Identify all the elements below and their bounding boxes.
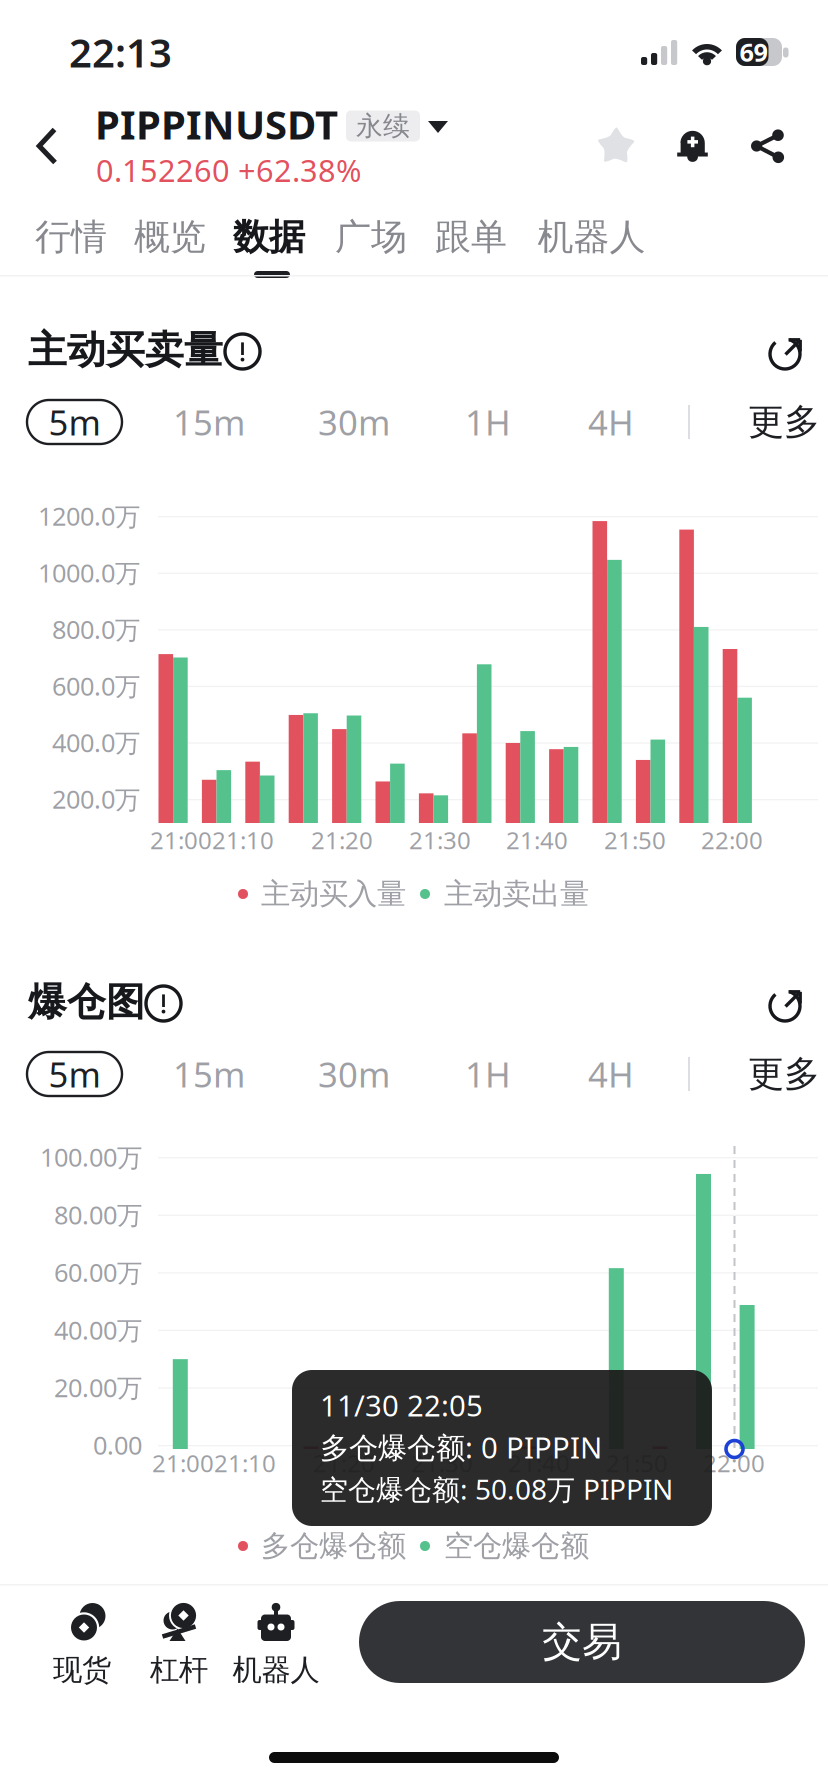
button[interactable]: 1H bbox=[0, 0, 828, 1792]
staticText: 200.0万 bbox=[52, 782, 140, 816]
staticText: 概览 bbox=[134, 215, 206, 259]
staticText: 1200.0万 bbox=[38, 499, 140, 533]
staticText: 21:20 bbox=[313, 1447, 375, 1479]
staticText: 21:30 bbox=[411, 1447, 473, 1479]
button[interactable]: Share bbox=[0, 0, 828, 1792]
staticText: 现货 bbox=[53, 1652, 111, 1688]
button[interactable]: 数据 bbox=[0, 0, 828, 1792]
button[interactable]: 概览 bbox=[0, 0, 828, 1792]
button[interactable]: Expand buy sell chart bbox=[0, 0, 828, 1792]
staticText: 交易 bbox=[542, 1617, 622, 1666]
staticText: 1H bbox=[465, 1051, 511, 1097]
button[interactable]: 现货 bbox=[0, 0, 828, 1792]
staticText: 广场 bbox=[335, 215, 407, 259]
button[interactable]: 4H bbox=[0, 0, 828, 1792]
button[interactable]: 30m bbox=[0, 0, 828, 1792]
staticText: 21:40 bbox=[506, 824, 568, 856]
button[interactable]: 跟单 bbox=[0, 0, 828, 1792]
staticText: 69 bbox=[739, 35, 767, 69]
button[interactable]: 更多 bbox=[0, 0, 828, 1792]
staticText: 21:40 bbox=[508, 1447, 570, 1479]
button[interactable]: 15m bbox=[0, 0, 828, 1792]
staticText: 跟单 bbox=[435, 215, 507, 259]
staticText: 多仓爆仓额 bbox=[261, 1528, 406, 1564]
staticText: 主动买入量 bbox=[261, 876, 406, 912]
staticText: 22:13 bbox=[69, 25, 172, 78]
staticText: 800.0万 bbox=[52, 612, 140, 646]
button[interactable]: 更多 bbox=[0, 0, 828, 1792]
staticText: 40.00万 bbox=[54, 1313, 142, 1347]
staticText: 杠杆 bbox=[150, 1652, 208, 1688]
staticText: 主动买卖量 bbox=[28, 326, 223, 374]
button[interactable]: 杠杆 bbox=[0, 0, 828, 1792]
staticText: 1H bbox=[465, 399, 511, 445]
staticText: 30m bbox=[318, 399, 390, 445]
staticText: 空仓爆仓额 bbox=[444, 1528, 589, 1564]
staticText: 多仓爆仓额: 0 PIPPIN bbox=[320, 1427, 602, 1466]
button[interactable]: Favourite bbox=[0, 0, 828, 1792]
button[interactable]: Expand liquidation chart bbox=[0, 0, 828, 1792]
staticText: 30m bbox=[318, 1051, 390, 1097]
button[interactable]: 交易 bbox=[0, 0, 828, 1792]
staticText: 22:00 bbox=[701, 824, 763, 856]
button[interactable]: Contract type bbox=[0, 0, 828, 1792]
button[interactable]: 机器人 bbox=[0, 0, 828, 1792]
staticText: 21:00 bbox=[152, 1447, 214, 1479]
staticText: 21:00 bbox=[150, 824, 212, 856]
button[interactable]: 30m bbox=[0, 0, 828, 1792]
staticText: 行情 bbox=[35, 215, 107, 259]
staticText: 100.00万 bbox=[40, 1140, 142, 1174]
staticText: 爆仓图 bbox=[28, 978, 145, 1026]
staticText: 空仓爆仓额: 50.08万 PIPPIN bbox=[320, 1470, 673, 1508]
staticText: 60.00万 bbox=[54, 1255, 142, 1289]
staticText: 600.0万 bbox=[52, 669, 140, 703]
staticText: 21:30 bbox=[409, 824, 471, 856]
staticText: 数据 bbox=[233, 215, 305, 259]
staticText: 22:00 bbox=[703, 1447, 765, 1479]
button[interactable]: Price alert bbox=[0, 0, 828, 1792]
button[interactable]: 机器人 bbox=[0, 0, 828, 1792]
staticText: 0.00 bbox=[93, 1428, 142, 1462]
staticText: 21:10 bbox=[212, 824, 274, 856]
button[interactable]: 5m bbox=[0, 0, 828, 1792]
staticText: 更多 bbox=[748, 400, 820, 444]
staticText: 4H bbox=[588, 399, 634, 445]
staticText: 永续 bbox=[356, 110, 410, 142]
staticText: 5m bbox=[48, 399, 100, 445]
button[interactable]: 4H bbox=[0, 0, 828, 1792]
staticText: 21:50 bbox=[604, 824, 666, 856]
button[interactable]: 15m bbox=[0, 0, 828, 1792]
staticText: 21:10 bbox=[214, 1447, 276, 1479]
staticText: 机器人 bbox=[232, 1652, 319, 1688]
button[interactable]: 行情 bbox=[0, 0, 828, 1792]
staticText: 80.00万 bbox=[54, 1198, 142, 1231]
staticText: 15m bbox=[173, 399, 245, 445]
staticText: 5m bbox=[48, 1051, 100, 1097]
staticText: 主动卖出量 bbox=[444, 876, 589, 912]
staticText: 0.152260 +62.38% bbox=[96, 150, 361, 190]
staticText: PIPPINUSDT bbox=[95, 97, 338, 150]
button[interactable]: Back bbox=[0, 0, 828, 1792]
staticText: 机器人 bbox=[537, 215, 645, 259]
staticText: 20.00万 bbox=[54, 1371, 142, 1404]
button[interactable]: 5m bbox=[0, 0, 828, 1792]
staticText: 21:20 bbox=[311, 824, 373, 856]
staticText: 更多 bbox=[748, 1052, 820, 1096]
staticText: 11/30 22:05 bbox=[320, 1385, 483, 1424]
staticText: 1000.0万 bbox=[38, 556, 140, 589]
staticText: 4H bbox=[588, 1051, 634, 1097]
staticText: 400.0万 bbox=[52, 726, 140, 759]
button[interactable]: 广场 bbox=[0, 0, 828, 1792]
staticText: 15m bbox=[173, 1051, 245, 1097]
button[interactable]: 1H bbox=[0, 0, 828, 1792]
